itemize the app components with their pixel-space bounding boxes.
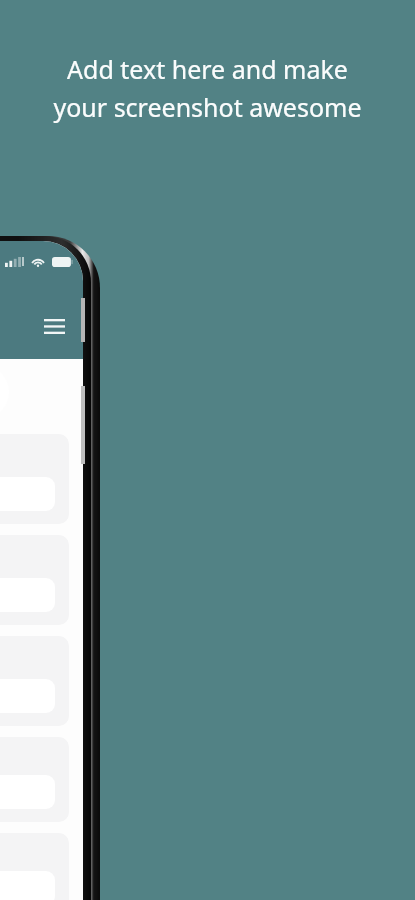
button[interactable]: 0 [0, 737, 69, 822]
button[interactable] [0, 833, 69, 900]
staticText: Add text here and make [67, 52, 348, 86]
staticText: your screenshot awesome [53, 90, 362, 124]
button[interactable]: Small-Large [0, 636, 69, 726]
button[interactable]: Open navigation menu [37, 309, 71, 343]
button[interactable]: Strategy [0, 434, 69, 524]
button[interactable]: Estimates [0, 535, 69, 625]
